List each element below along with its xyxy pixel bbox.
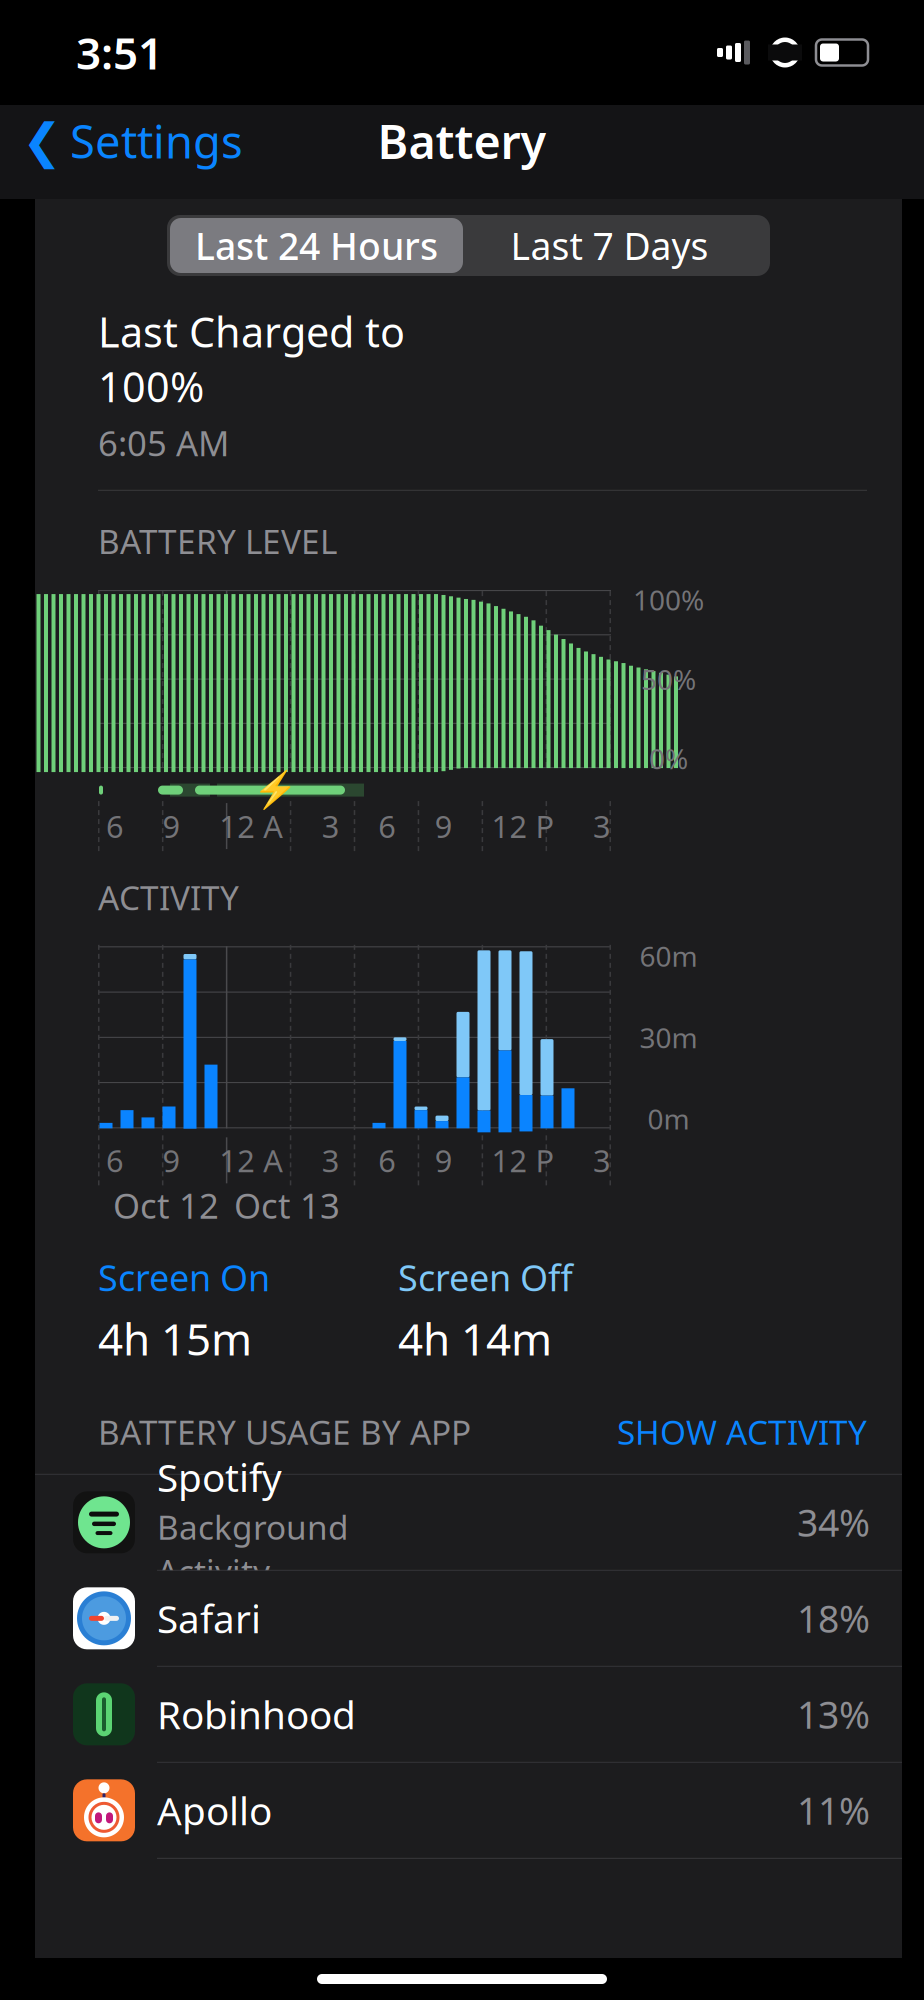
staticText: 0% [649, 740, 688, 777]
staticText: 4h 15m [98, 1309, 252, 1367]
staticText: SHOW ACTIVITY [617, 1410, 867, 1454]
button[interactable]: Robinhood [35, 1667, 902, 1763]
staticText: Background Activity [157, 1505, 349, 1593]
staticText: 12 A [219, 806, 283, 846]
staticText: 6 [106, 806, 124, 846]
staticText: 9 [435, 806, 453, 846]
staticText: 3 [322, 1140, 340, 1181]
staticText: Last Charged to 100% [98, 304, 405, 414]
button[interactable]: Last 24 Hours [170, 218, 463, 273]
staticText: 30m [639, 1019, 697, 1056]
staticText: 3 [593, 1140, 611, 1181]
staticText: BATTERY USAGE BY APP [98, 1410, 471, 1454]
staticText: 12 P [491, 1140, 554, 1181]
staticText: 6 [378, 806, 396, 846]
staticText: 18% [797, 1594, 870, 1643]
staticText: 3 [593, 806, 611, 846]
staticText: ❮ [22, 114, 62, 168]
staticText: Battery [377, 110, 546, 172]
staticText: 6 [378, 1140, 396, 1181]
staticText: 100% [633, 581, 704, 618]
staticText: 12 P [491, 806, 554, 846]
staticText: Settings [70, 111, 243, 171]
staticText: Oct 12 [113, 1182, 219, 1228]
staticText: BATTERY LEVEL [98, 519, 337, 563]
staticText: 9 [435, 1140, 453, 1181]
staticText: Spotify [157, 1451, 282, 1503]
staticText: 3 [322, 806, 340, 846]
staticText: 13% [797, 1690, 870, 1739]
staticText: Screen Off [398, 1253, 573, 1301]
staticText: Last 24 Hours [195, 221, 438, 270]
staticText: ACTIVITY [98, 875, 239, 919]
staticText: 6 [106, 1140, 124, 1181]
button[interactable]: Safari [35, 1571, 902, 1667]
staticText: 4h 14m [398, 1309, 552, 1367]
staticText: 34% [797, 1498, 870, 1547]
staticText: 11% [797, 1786, 870, 1835]
staticText: Robinhood [157, 1689, 356, 1740]
staticText: Last 7 Days [510, 221, 708, 270]
staticText: ⚡ [253, 769, 298, 811]
staticText: Apollo [157, 1785, 272, 1836]
staticText: 50% [641, 660, 696, 698]
button[interactable]: SHOW ACTIVITY [617, 1410, 867, 1454]
staticText: 9 [163, 1140, 181, 1181]
staticText: Screen On [98, 1253, 270, 1301]
button[interactable]: Last 7 Days [463, 218, 756, 273]
staticText: 3:51 [76, 23, 163, 82]
staticText: 12 A [219, 1140, 283, 1181]
button[interactable]: Spotify [35, 1475, 902, 1571]
staticText: Oct 13 [234, 1182, 340, 1228]
button[interactable]: Apollo [35, 1763, 902, 1859]
staticText: 60m [639, 937, 697, 974]
button[interactable]: ❮ [0, 105, 253, 177]
staticText: Safari [157, 1593, 261, 1644]
staticText: 6:05 AM [98, 420, 229, 466]
staticText: 9 [163, 806, 181, 846]
staticText: 0m [647, 1100, 689, 1137]
